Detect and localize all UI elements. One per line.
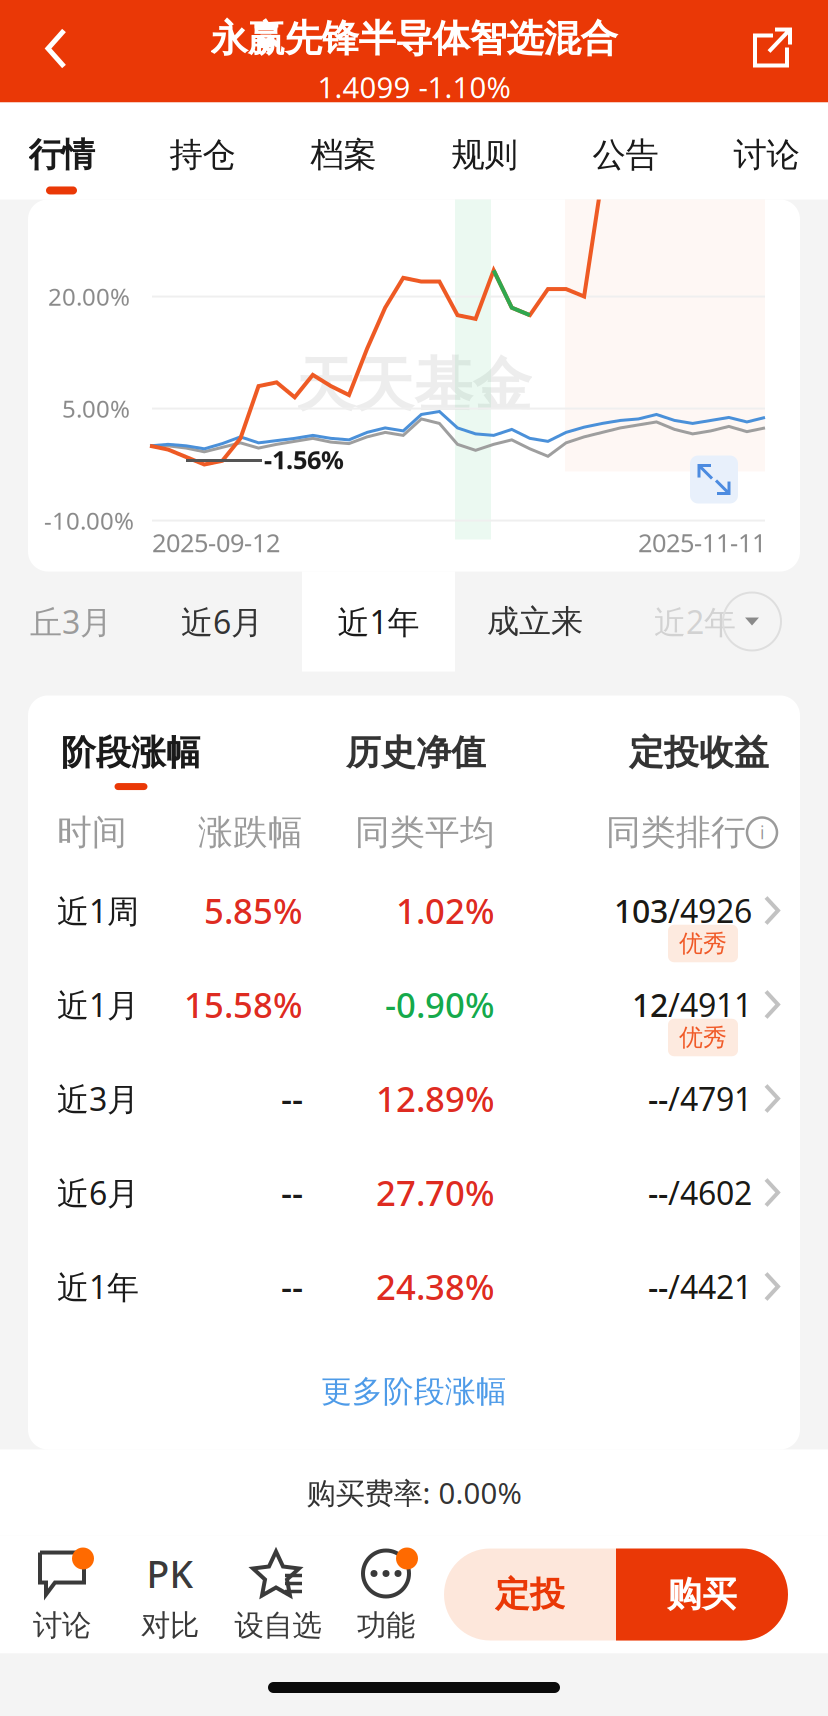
staticText: 近1年 <box>337 600 419 643</box>
button[interactable]: 购买 <box>616 1548 788 1640</box>
button[interactable]: 近1月 <box>28 957 800 1051</box>
button[interactable]: More periods <box>722 591 782 651</box>
staticText: 定投收益 <box>629 731 769 774</box>
staticText: 近3月 <box>57 1077 139 1120</box>
staticText: 同类平均 <box>355 811 495 854</box>
staticText: 近6月 <box>181 600 263 643</box>
staticText: --/4421 <box>648 1265 752 1308</box>
staticText: 5.00% <box>62 393 130 424</box>
staticText: --/4791 <box>648 1077 752 1120</box>
staticText: 12/4911 <box>632 983 752 1026</box>
staticText: 购买 <box>667 1573 737 1616</box>
staticText: 12.89% <box>376 1075 495 1121</box>
staticText: 讨论 <box>33 1607 91 1643</box>
staticText: 24.38% <box>376 1263 495 1309</box>
staticText: 阶段涨幅 <box>61 731 201 774</box>
button[interactable]: 近1周 <box>28 863 800 957</box>
staticText: -- <box>281 1075 303 1121</box>
staticText: 103/4926 <box>614 889 752 932</box>
staticText: 丘3月 <box>30 600 112 643</box>
button[interactable]: 近1年 <box>302 571 455 671</box>
staticText: -0.90% <box>385 981 495 1027</box>
staticText: 天天基金 <box>296 349 532 422</box>
button[interactable]: 定投 <box>444 1548 616 1640</box>
button[interactable]: 讨论 <box>696 102 828 199</box>
staticText: 近6月 <box>57 1171 139 1214</box>
button[interactable]: 更多阶段涨幅 <box>28 1333 800 1449</box>
staticText: 27.70% <box>376 1169 495 1215</box>
button[interactable]: Back <box>0 0 112 102</box>
staticText: 近1周 <box>57 889 139 932</box>
staticText: PK <box>146 1549 193 1598</box>
button[interactable]: 近2年 <box>615 571 775 671</box>
staticText: 持仓 <box>169 134 235 175</box>
button[interactable]: 历史净值 <box>234 695 598 801</box>
staticText: 购买费率: 0.00% <box>306 1473 521 1512</box>
button[interactable]: 近3月 <box>28 1051 800 1145</box>
staticText: 档案 <box>310 134 376 175</box>
staticText: 1.4099 -1.10% <box>317 67 510 106</box>
button[interactable]: 丘3月 <box>0 571 142 671</box>
staticText: i <box>760 821 764 844</box>
staticText: 20.00% <box>48 281 130 312</box>
button[interactable]: 档案 <box>273 102 414 199</box>
button[interactable]: 讨论 <box>8 1535 116 1653</box>
button[interactable]: 近6月 <box>142 571 302 671</box>
button[interactable]: 规则 <box>414 102 555 199</box>
staticText: 成立来 <box>487 602 583 641</box>
staticText: 设自选 <box>234 1607 321 1643</box>
staticText: 近1月 <box>57 983 139 1026</box>
staticText: 5.85% <box>204 887 303 933</box>
staticText: 时间 <box>57 811 127 854</box>
staticText: 涨跌幅 <box>198 811 303 854</box>
staticText: -1.56% <box>264 442 344 476</box>
button[interactable]: 设自选 <box>224 1535 332 1653</box>
button[interactable]: PK <box>116 1535 224 1653</box>
staticText: -- <box>281 1169 303 1215</box>
staticText: 近1年 <box>57 1265 139 1308</box>
button[interactable]: 成立来 <box>455 571 615 671</box>
button[interactable]: 近1年 <box>28 1239 800 1333</box>
staticText: 优秀 <box>679 929 727 958</box>
staticText: 公告 <box>592 134 658 175</box>
staticText: 优秀 <box>679 1023 727 1052</box>
staticText: 规则 <box>451 134 517 175</box>
button[interactable]: 近6月 <box>28 1145 800 1239</box>
staticText: 近2年 <box>654 600 736 643</box>
button[interactable]: 阶段涨幅 <box>28 695 234 801</box>
button[interactable]: 定投收益 <box>598 695 800 801</box>
staticText: 永赢先锋半导体智选混合 <box>210 16 617 61</box>
staticText: 历史净值 <box>346 731 486 774</box>
staticText: 2025-09-12 <box>152 525 280 559</box>
staticText: 行情 <box>28 134 94 175</box>
staticText: 15.58% <box>184 981 303 1027</box>
staticText: -10.00% <box>44 505 134 536</box>
button[interactable]: 持仓 <box>132 102 273 199</box>
button[interactable]: 行情 <box>0 102 132 199</box>
button[interactable]: Share <box>716 0 828 102</box>
button[interactable]: 功能 <box>332 1535 440 1653</box>
staticText: 同类排行 <box>606 811 746 854</box>
staticText: 1.02% <box>396 887 495 933</box>
staticText: -- <box>281 1263 303 1309</box>
staticText: 2025-11-11 <box>638 525 766 559</box>
staticText: --/4602 <box>648 1171 752 1214</box>
staticText: 对比 <box>141 1607 199 1643</box>
staticText: 更多阶段涨幅 <box>321 1373 507 1410</box>
button[interactable]: Expand chart <box>690 455 738 503</box>
staticText: 讨论 <box>733 134 799 175</box>
staticText: 功能 <box>357 1607 415 1643</box>
staticText: 定投 <box>495 1573 565 1616</box>
button[interactable]: 公告 <box>555 102 696 199</box>
